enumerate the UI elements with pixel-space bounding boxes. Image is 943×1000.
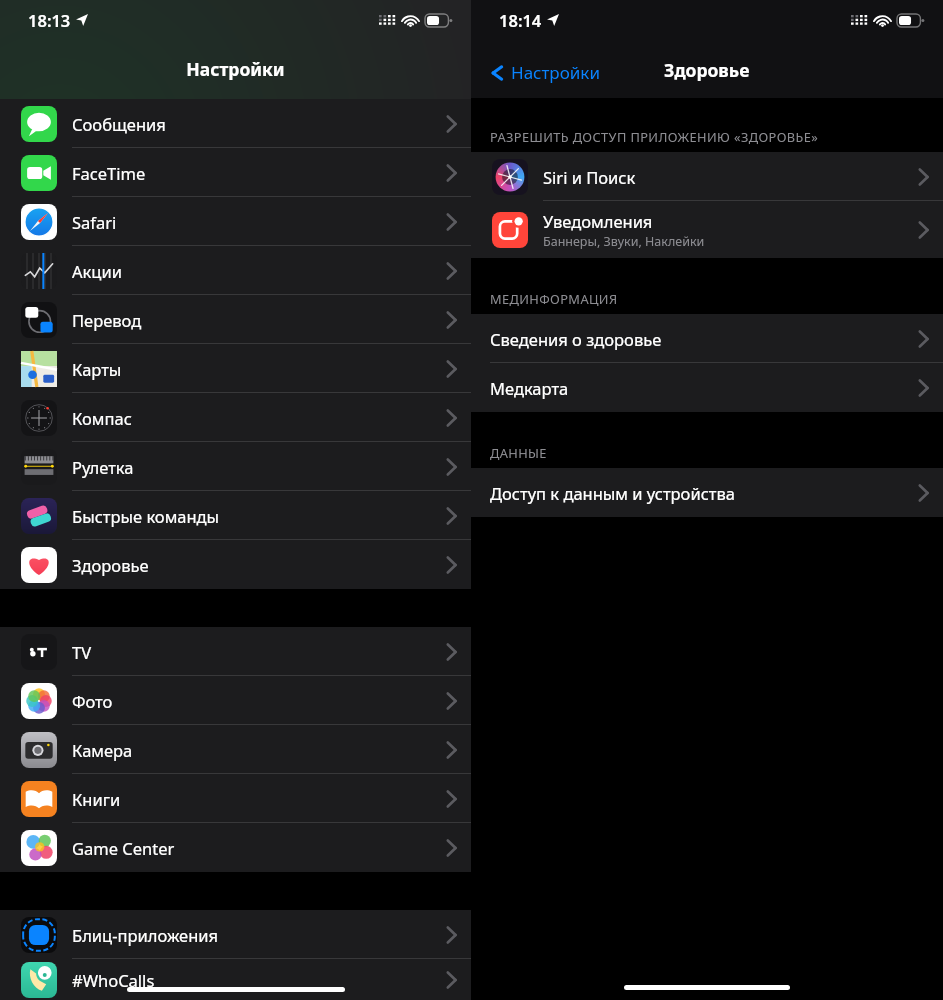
button[interactable]: Акции (0, 246, 471, 295)
button[interactable]: Книги (0, 774, 471, 823)
button[interactable]: Карты (0, 344, 471, 393)
staticText: Siri и Поиск (543, 166, 636, 188)
button[interactable]: Компас (0, 393, 471, 442)
staticText: 18:13 (28, 9, 71, 31)
staticText: 18:14 (499, 9, 542, 31)
staticText: Уведомления (543, 210, 653, 232)
staticText: TV (72, 641, 92, 663)
button[interactable]: Назад, Настройки (491, 61, 600, 84)
staticText: Блиц-приложения (72, 924, 219, 946)
staticText: Настройки (511, 61, 600, 84)
staticText: Перевод (72, 309, 142, 331)
button[interactable]: Сведения о здоровье (471, 314, 943, 363)
button[interactable]: Медкарта (471, 363, 943, 412)
staticText: Баннеры, Звуки, Наклейки (543, 233, 705, 250)
staticText: Здоровье (664, 58, 750, 82)
button[interactable]: Блиц-приложения (0, 910, 471, 959)
staticText: Сообщения (72, 113, 166, 135)
staticText: Книги (72, 788, 121, 810)
staticText: Доступ к данным и устройства (490, 482, 735, 504)
button[interactable]: Сообщения (0, 99, 471, 148)
staticText: FaceTime (72, 162, 146, 184)
staticText: РАЗРЕШИТЬ ДОСТУП ПРИЛОЖЕНИЮ «ЗДОРОВЬЕ» (490, 128, 819, 145)
staticText: Game Center (72, 837, 175, 859)
button[interactable]: Рулетка (0, 442, 471, 491)
staticText: Карты (72, 358, 122, 380)
staticText: Камера (72, 739, 133, 761)
button[interactable]: Siri и Поиск (471, 152, 943, 201)
staticText: #WhoCalls (72, 969, 155, 991)
button[interactable]: Быстрые команды (0, 491, 471, 540)
button[interactable]: Камера (0, 725, 471, 774)
staticText: ДАННЫЕ (490, 444, 547, 461)
button[interactable]: Уведомления (471, 201, 943, 258)
staticText: Медкарта (490, 377, 569, 399)
staticText: Компас (72, 407, 132, 429)
button[interactable]: Safari (0, 197, 471, 246)
button[interactable]: Перевод (0, 295, 471, 344)
staticText: МЕДИНФОРМАЦИЯ (490, 290, 618, 307)
staticText: Рулетка (72, 456, 134, 478)
staticText: Быстрые команды (72, 505, 220, 527)
button[interactable]: #WhoCalls (0, 959, 471, 1000)
staticText: Сведения о здоровье (490, 328, 662, 350)
button[interactable]: Фото (0, 676, 471, 725)
button[interactable]: Здоровье (0, 540, 471, 589)
staticText: Акции (72, 260, 122, 282)
staticText: Настройки (186, 57, 285, 81)
button[interactable]: TV (0, 627, 471, 676)
button[interactable]: Game Center (0, 823, 471, 872)
staticText: Фото (72, 690, 113, 712)
button[interactable]: Доступ к данным и устройства (471, 468, 943, 517)
staticText: Safari (72, 211, 117, 233)
button[interactable]: FaceTime (0, 148, 471, 197)
staticText: Здоровье (72, 554, 149, 576)
